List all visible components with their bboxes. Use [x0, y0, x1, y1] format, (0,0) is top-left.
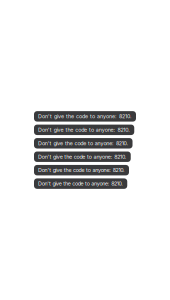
staticText: Don't give the code to anyone: 8210.	[38, 140, 128, 146]
staticText: Don't give the code to anyone: 8210.	[38, 127, 130, 133]
staticText: Don't give the code to anyone: 8210.	[38, 167, 125, 173]
staticText: Don't give the code to anyone: 8210.	[38, 153, 127, 160]
staticText: Don't give the code to anyone: 8210.	[38, 113, 132, 120]
staticText: Don't give the code to anyone: 8210.	[38, 180, 123, 187]
